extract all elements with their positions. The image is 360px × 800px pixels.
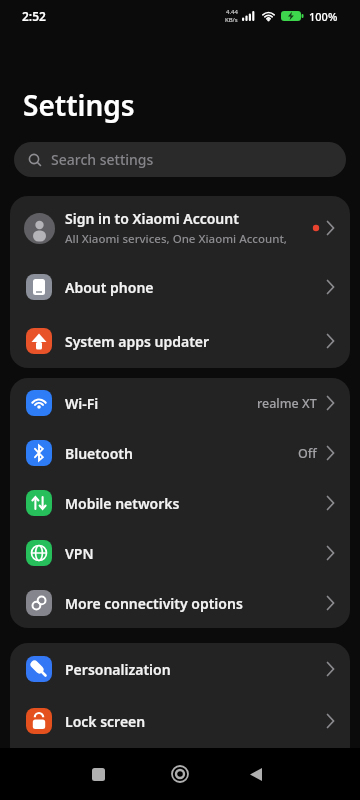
button[interactable] [158,752,202,796]
button[interactable]: Wi-Fi [10,378,350,428]
staticText: Personalization [65,660,171,679]
staticText: Off [298,445,317,462]
staticText: 4.44 [226,8,238,16]
staticText: System apps updater [65,332,210,351]
staticText: 100% [309,9,338,24]
staticText: More connectivity options [65,594,243,613]
staticText: Settings [23,86,135,124]
staticText: VPN [65,544,94,563]
staticText: Bluetooth [65,444,133,463]
staticText: KB/s [225,16,238,24]
button[interactable]: Sign in to Xiaomi Account [10,196,350,260]
button[interactable]: Personalization [10,643,350,695]
button[interactable]: Lock screen [10,695,350,747]
button[interactable]: VPN [10,528,350,578]
button[interactable]: Mobile networks [10,478,350,528]
staticText: 2:52 [22,8,46,24]
button[interactable]: About phone [10,260,350,314]
button[interactable] [233,752,277,796]
staticText: About phone [65,278,154,297]
button[interactable] [76,752,120,796]
button[interactable]: Bluetooth [10,428,350,478]
button[interactable]: System apps updater [10,314,350,368]
staticText: Search settings [51,150,154,169]
staticText: Mobile networks [65,494,180,513]
button[interactable]: Search settings [14,142,346,177]
staticText: Sign in to Xiaomi Account [65,209,239,228]
staticText: Lock screen [65,712,146,731]
button[interactable]: More connectivity options [10,578,350,628]
staticText: realme XT [257,395,317,412]
staticText: Wi-Fi [65,394,99,413]
staticText: All Xiaomi services, One Xiaomi Account, [65,231,287,247]
